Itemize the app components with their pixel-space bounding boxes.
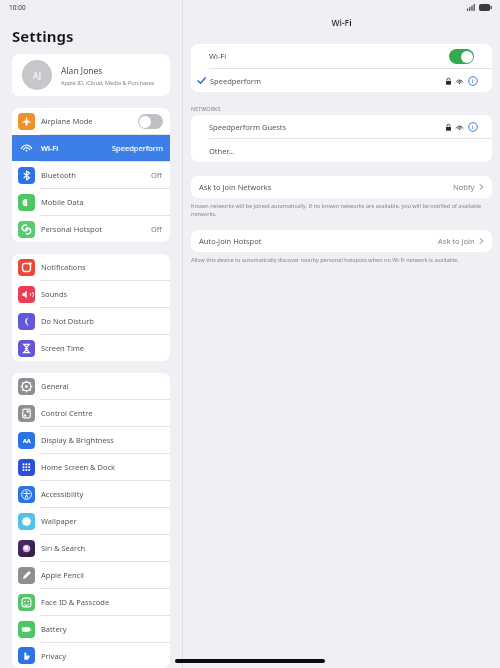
staticText: AJ [33, 70, 41, 81]
button[interactable]: Speedperform [191, 69, 492, 92]
staticText: Apple Pencil [41, 570, 163, 580]
button[interactable]: General [12, 373, 170, 399]
button[interactable]: Toggle off [138, 114, 163, 129]
staticText: Speedperform [112, 143, 163, 153]
staticText: Wi-Fi [41, 143, 112, 153]
staticText: i [472, 77, 474, 85]
button[interactable]: Home Screen & Dock [12, 454, 170, 480]
staticText: NETWORKS [191, 105, 221, 112]
staticText: Screen Time [41, 343, 163, 353]
staticText: Allow this device to automatically disco… [191, 256, 459, 263]
button[interactable]: Other... [191, 139, 492, 162]
button[interactable]: Apple Pencil [12, 562, 170, 588]
button[interactable]: AJ [12, 54, 170, 96]
staticText: Sounds [41, 289, 163, 299]
staticText: Accessibility [41, 489, 163, 499]
button[interactable]: Notifications [12, 254, 170, 280]
staticText: i [472, 123, 474, 131]
staticText: Speedperform Guests [209, 122, 446, 132]
staticText: Apple ID, iCloud, Media & Purchases [61, 79, 155, 86]
staticText: Other... [209, 146, 235, 156]
button[interactable]: Auto-Join Hotspot [191, 230, 492, 252]
button[interactable]: Accessibility [12, 481, 170, 507]
staticText: Bluetooth [41, 170, 151, 180]
staticText: Alan Jones [61, 65, 103, 77]
staticText: 10:00 [9, 3, 26, 12]
staticText: Ask to Join [438, 236, 475, 246]
staticText: AA [23, 437, 31, 444]
staticText: Speedperform [210, 76, 446, 86]
staticText: Off [151, 224, 163, 234]
staticText: Notify [453, 182, 475, 192]
button[interactable]: Control Centre [12, 400, 170, 426]
staticText: Known networks will be joined automatica… [191, 202, 482, 218]
staticText: Do Not Disturb [41, 316, 163, 326]
staticText: Home Screen & Dock [41, 462, 163, 472]
button[interactable]: Screen Time [12, 335, 170, 361]
staticText: Airplane Mode [41, 116, 138, 126]
button[interactable]: Wi-Fi [12, 135, 170, 161]
staticText: Ask to Join Networks [199, 182, 453, 192]
staticText: Battery [41, 624, 163, 634]
staticText: Wi-Fi [183, 17, 500, 29]
staticText: Auto-Join Hotspot [199, 236, 438, 246]
button[interactable]: Face ID & Passcode [12, 589, 170, 615]
button[interactable]: Wallpaper [12, 508, 170, 534]
button[interactable]: Privacy [12, 643, 170, 668]
staticText: General [41, 381, 163, 391]
staticText: Privacy [41, 651, 163, 661]
button[interactable]: More info [468, 122, 478, 132]
staticText: Mobile Data [41, 197, 163, 207]
staticText: Notifications [41, 262, 163, 272]
staticText: Off [151, 170, 163, 180]
staticText: Control Centre [41, 408, 163, 418]
button[interactable]: Battery [12, 616, 170, 642]
button[interactable]: Toggle on [449, 49, 474, 64]
staticText: Siri & Search [41, 543, 163, 553]
staticText: Wallpaper [41, 516, 163, 526]
staticText: Wi-Fi [209, 51, 449, 61]
staticText: Personal Hotspot [41, 224, 151, 234]
button[interactable]: Speedperform Guests [191, 115, 492, 138]
button[interactable]: Do Not Disturb [12, 308, 170, 334]
button[interactable]: Bluetooth [12, 162, 170, 188]
button[interactable]: Sounds [12, 281, 170, 307]
button[interactable]: More info [468, 76, 478, 86]
button[interactable]: Personal Hotspot [12, 216, 170, 242]
button[interactable]: Siri & Search [12, 535, 170, 561]
button[interactable]: Wi-Fi [191, 44, 492, 68]
staticText: Settings [12, 26, 74, 46]
staticText: Display & Brightness [41, 435, 163, 445]
button[interactable]: AA [12, 427, 170, 453]
button[interactable]: Airplane Mode [12, 108, 170, 134]
button[interactable]: Ask to Join Networks [191, 176, 492, 198]
button[interactable]: Mobile Data [12, 189, 170, 215]
staticText: Face ID & Passcode [41, 597, 163, 607]
